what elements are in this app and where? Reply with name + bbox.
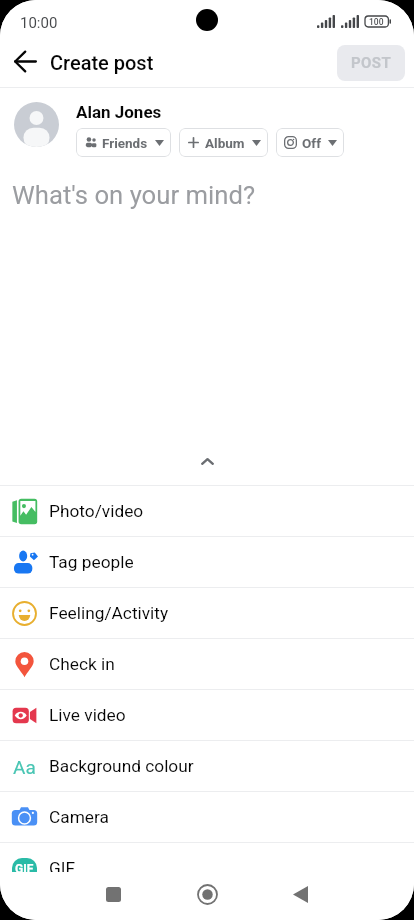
button[interactable]: Off	[276, 128, 344, 157]
staticText: Aa	[13, 756, 36, 778]
staticText: Alan Jones	[76, 102, 162, 122]
button[interactable]: Profile photo	[14, 102, 59, 147]
button[interactable]: Expand composer	[0, 450, 414, 485]
staticText: Background colour	[49, 756, 194, 776]
button[interactable]: Friends	[76, 128, 171, 157]
button[interactable]: Album	[179, 128, 268, 157]
button[interactable]: Feeling/Activity	[0, 588, 414, 638]
staticText: Tag people	[49, 552, 134, 572]
staticText: Album	[205, 135, 245, 151]
button[interactable]: Aa	[0, 741, 414, 791]
staticText: What's on your mind?	[12, 180, 256, 210]
staticText: 100	[369, 17, 384, 27]
staticText: GIF	[15, 862, 34, 876]
button[interactable]: Home	[184, 871, 230, 917]
staticText: Friends	[102, 135, 148, 151]
button[interactable]: GIF	[0, 843, 414, 893]
staticText: Photo/video	[49, 501, 144, 521]
button[interactable]: Camera	[0, 792, 414, 842]
staticText: Off	[302, 135, 321, 151]
staticText: Feeling/Activity	[49, 603, 169, 623]
button[interactable]: Live video	[0, 690, 414, 740]
staticText: Create post	[50, 51, 154, 74]
staticText: POST	[351, 54, 392, 72]
staticText: Check in	[49, 654, 115, 674]
button[interactable]: Back	[277, 871, 323, 917]
button[interactable]: POST	[337, 45, 405, 81]
button[interactable]: Back	[0, 39, 48, 87]
staticText: 10:00	[20, 14, 58, 32]
button[interactable]: Photo/video	[0, 486, 414, 536]
button[interactable]: Tag people	[0, 537, 414, 587]
button[interactable]: Check in	[0, 639, 414, 689]
staticText: Live video	[49, 705, 126, 725]
staticText: GIF	[49, 858, 76, 878]
button[interactable]: Recent apps	[90, 871, 136, 917]
staticText: Camera	[49, 807, 109, 827]
